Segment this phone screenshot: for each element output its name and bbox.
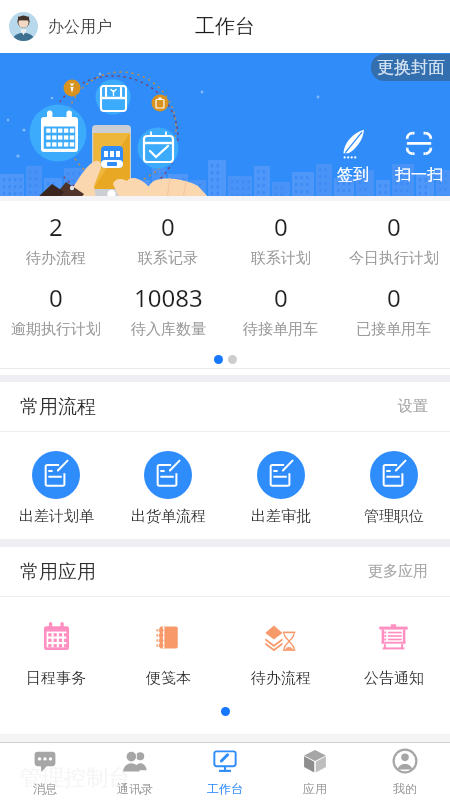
staticText: 更多应用 <box>368 562 428 581</box>
staticText: 应用 <box>303 781 327 796</box>
button[interactable]: 应用 <box>270 743 360 800</box>
staticText: 通讯录 <box>117 781 153 796</box>
staticText: 管理控制台 <box>20 764 130 792</box>
staticText: 待接单用车 <box>243 320 318 339</box>
button[interactable]: 出差审批 <box>224 451 337 526</box>
button[interactable]: 更换封面 <box>371 54 450 81</box>
staticText: 已接单用车 <box>356 320 431 339</box>
button[interactable]: 设置 <box>398 397 428 416</box>
staticText: 出差审批 <box>251 507 311 526</box>
button[interactable]: 便笺本 <box>112 621 224 688</box>
staticText: 更换封面 <box>377 57 445 78</box>
staticText: 0 <box>387 210 401 243</box>
button[interactable]: 0 <box>224 281 337 339</box>
staticText: 待办流程 <box>26 249 86 268</box>
staticText: 办公用户 <box>48 17 112 37</box>
staticText: 常用应用 <box>20 560 96 584</box>
button[interactable]: 2 <box>0 210 112 268</box>
button[interactable]: 更多应用 <box>368 562 428 581</box>
button[interactable]: 日程事务 <box>0 621 112 688</box>
button[interactable]: 0 <box>0 281 112 339</box>
button[interactable]: 0 <box>337 210 450 268</box>
staticText: 消息 <box>33 781 57 796</box>
staticText: 工作台 <box>207 781 243 796</box>
button[interactable]: Profile <box>9 12 112 41</box>
staticText: 0 <box>387 281 401 314</box>
staticText: 联系计划 <box>251 249 311 268</box>
staticText: 逾期执行计划 <box>11 320 101 339</box>
button[interactable]: 公告通知 <box>337 621 450 688</box>
staticText: 管理职位 <box>364 507 424 526</box>
staticText: 0 <box>274 281 288 314</box>
button[interactable]: 0 <box>112 210 224 268</box>
button[interactable]: 10083 <box>112 281 224 339</box>
button[interactable]: 出差计划单 <box>0 451 112 526</box>
button[interactable]: 工作台 <box>180 743 270 800</box>
staticText: 2 <box>49 210 63 243</box>
button[interactable]: 签到 <box>325 129 381 185</box>
button[interactable]: 通讯录 <box>90 743 180 800</box>
other: Profile <box>9 12 38 41</box>
button[interactable]: 出货单流程 <box>112 451 224 526</box>
button[interactable]: 扫一扫 <box>391 129 447 185</box>
staticText: 出货单流程 <box>131 507 206 526</box>
staticText: 便笺本 <box>146 669 191 688</box>
staticText: 设置 <box>398 397 428 416</box>
staticText: 0 <box>274 210 288 243</box>
staticText: 待入库数量 <box>131 320 206 339</box>
staticText: 0 <box>161 210 175 243</box>
button[interactable]: 0 <box>337 281 450 339</box>
staticText: 扫一扫 <box>395 165 443 185</box>
staticText: 签到 <box>337 165 369 185</box>
staticText: 0 <box>49 281 63 314</box>
staticText: 我的 <box>393 781 417 796</box>
staticText: 公告通知 <box>364 669 424 688</box>
button[interactable]: 待办流程 <box>224 621 337 688</box>
staticText: 待办流程 <box>251 669 311 688</box>
staticText: 联系记录 <box>138 249 198 268</box>
staticText: 出差计划单 <box>19 507 94 526</box>
staticText: 10083 <box>134 281 203 314</box>
button[interactable]: 0 <box>224 210 337 268</box>
button[interactable]: 我的 <box>360 743 450 800</box>
staticText: 工作台 <box>195 14 255 39</box>
staticText: 日程事务 <box>26 669 86 688</box>
button[interactable]: 消息 <box>0 743 90 800</box>
staticText: 今日执行计划 <box>349 249 439 268</box>
button[interactable]: 管理职位 <box>337 451 450 526</box>
staticText: 常用流程 <box>20 395 96 419</box>
